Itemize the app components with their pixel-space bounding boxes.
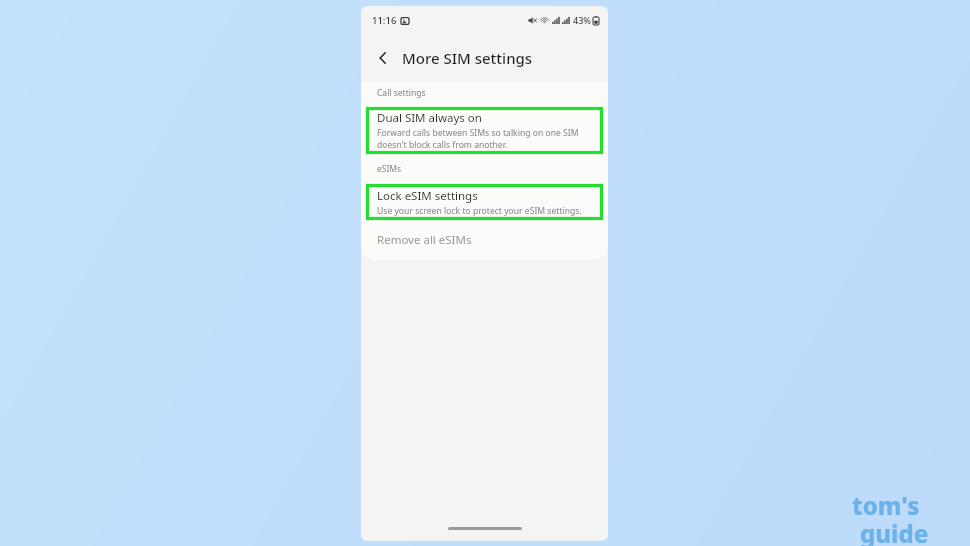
staticText: tom's (852, 489, 920, 522)
button[interactable]: Lock eSIM settings (366, 184, 603, 220)
staticText: 11:16 (372, 14, 397, 27)
staticText: Call settings (377, 87, 426, 99)
staticText: 43% (573, 14, 591, 26)
staticText: Lock eSIM settings (377, 188, 478, 204)
staticText: Remove all eSIMs (377, 232, 472, 248)
staticText: More SIM settings (402, 48, 533, 68)
staticText: guide (860, 517, 929, 546)
button[interactable]: Back (370, 45, 396, 71)
staticText: Use your screen lock to protect your eSI… (377, 205, 582, 217)
button[interactable]: Dual SIM always on (366, 107, 603, 154)
staticText: eSIMs (377, 163, 402, 175)
staticText: Dual SIM always on (377, 110, 482, 126)
staticText: Forward calls between SIMs so talking on… (377, 127, 579, 139)
button[interactable]: Remove all eSIMs (361, 226, 608, 254)
staticText: doesn't block calls from another. (377, 139, 508, 151)
